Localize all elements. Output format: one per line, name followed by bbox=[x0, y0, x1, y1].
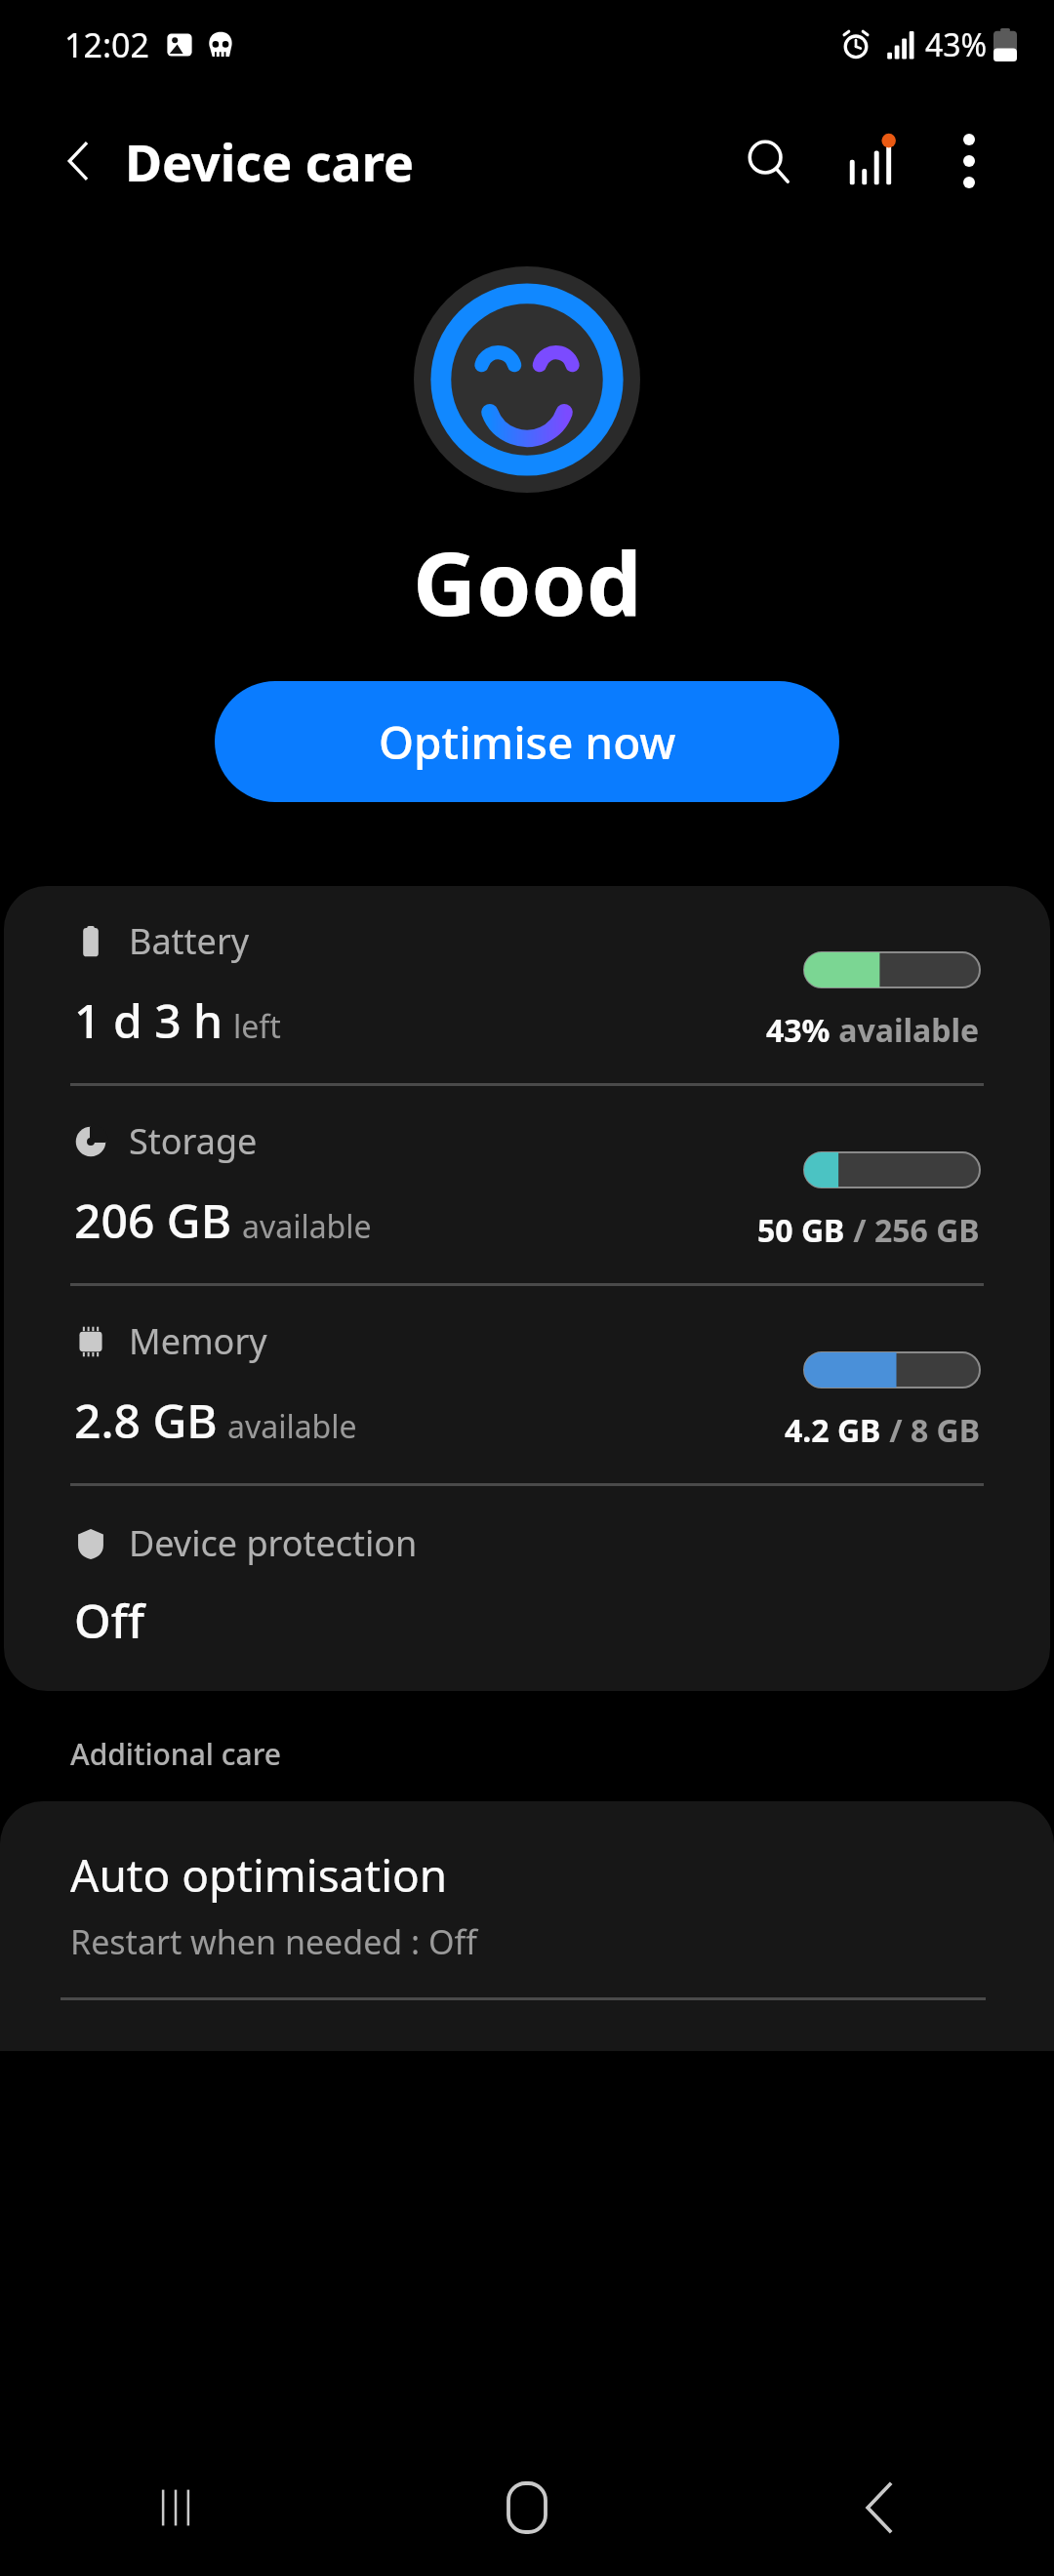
staticText: available bbox=[227, 1405, 357, 1448]
staticText: 206 GB bbox=[74, 1188, 232, 1252]
staticText: 43% bbox=[925, 23, 988, 66]
staticText: 50 GB bbox=[757, 1209, 845, 1252]
staticText: Off bbox=[74, 1589, 144, 1652]
button[interactable]: Storage bbox=[4, 1086, 1050, 1283]
staticText: Battery bbox=[129, 917, 250, 965]
button[interactable]: More options bbox=[927, 119, 1011, 203]
staticText: available bbox=[831, 1009, 980, 1052]
staticText: Good bbox=[413, 522, 642, 642]
button[interactable]: Device protection bbox=[4, 1486, 1050, 1691]
staticText: 43% bbox=[766, 1009, 831, 1052]
button[interactable]: Diagnostics bbox=[830, 119, 913, 203]
staticText: 2.8 GB bbox=[74, 1389, 218, 1452]
staticText: / 8 GB bbox=[881, 1409, 980, 1452]
staticText: Device care bbox=[125, 127, 414, 196]
staticText: left bbox=[233, 1005, 281, 1048]
button[interactable]: Navigate up bbox=[43, 126, 113, 196]
staticText: Auto optimisation bbox=[70, 1844, 448, 1906]
staticText: Device protection bbox=[129, 1519, 418, 1567]
button[interactable]: Optimise now bbox=[215, 681, 839, 802]
button[interactable]: Home bbox=[351, 2439, 703, 2576]
staticText: Optimise now bbox=[379, 711, 676, 773]
button[interactable]: Recent apps bbox=[0, 2439, 351, 2576]
staticText: 12:02 bbox=[64, 22, 149, 67]
staticText: Restart when needed : Off bbox=[70, 1919, 477, 1964]
staticText: 4.2 GB bbox=[785, 1409, 881, 1452]
button[interactable]: Battery bbox=[4, 886, 1050, 1083]
staticText: / 256 GB bbox=[845, 1209, 980, 1252]
staticText: 1 d 3 h bbox=[74, 988, 223, 1052]
staticText: Additional care bbox=[70, 1734, 281, 1774]
button[interactable]: Back bbox=[703, 2439, 1054, 2576]
staticText: Memory bbox=[129, 1317, 267, 1365]
button[interactable]: Search bbox=[726, 119, 810, 203]
button[interactable]: Memory bbox=[4, 1286, 1050, 1483]
staticText: Storage bbox=[129, 1117, 258, 1165]
staticText: available bbox=[242, 1205, 372, 1248]
button[interactable]: Auto optimisation bbox=[0, 1801, 1054, 1997]
